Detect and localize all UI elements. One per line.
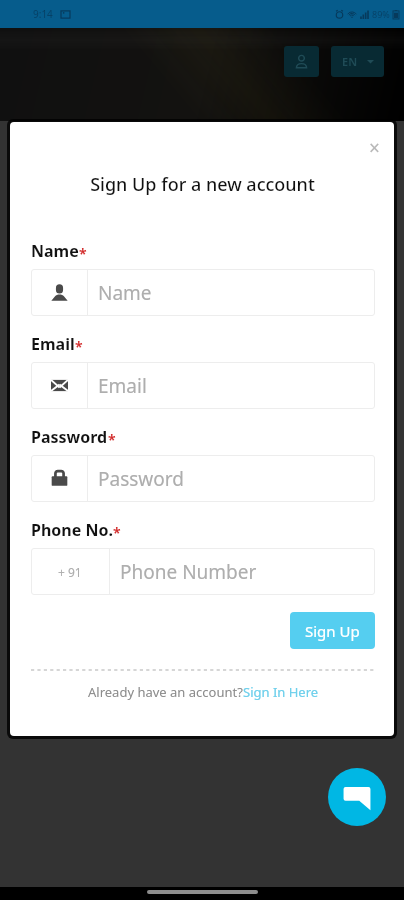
staticText: Email	[98, 373, 147, 399]
button[interactable]: Sign Up	[290, 612, 375, 649]
button[interactable]: Chat	[328, 768, 386, 826]
button[interactable]: Close	[362, 135, 386, 159]
staticText: 9:14	[33, 7, 53, 21]
button[interactable]: Sign In Here	[243, 683, 319, 701]
staticText: *	[108, 430, 116, 449]
staticText: *	[75, 337, 83, 356]
staticText: + 91	[58, 564, 82, 580]
staticText: EN	[342, 54, 358, 69]
staticText: 89%	[372, 8, 390, 20]
staticText: *	[79, 244, 87, 263]
staticText: *	[113, 523, 121, 542]
staticText: Phone Number	[120, 559, 257, 585]
button[interactable]: Account	[284, 46, 319, 77]
staticText: ×	[369, 135, 380, 159]
staticText: Name	[98, 280, 152, 306]
button[interactable]: Password	[31, 455, 375, 502]
button[interactable]: + 91	[31, 548, 375, 595]
staticText: Name	[31, 240, 79, 262]
staticText: Email	[31, 333, 75, 355]
button[interactable]: EN	[331, 46, 384, 77]
button[interactable]: Name	[31, 269, 375, 316]
staticText: Phone No.	[31, 519, 113, 541]
staticText: Sign Up for a new account	[90, 172, 315, 197]
staticText: Sign Up	[305, 621, 360, 641]
staticText: Already have an account?	[88, 683, 243, 701]
button[interactable]: Email	[31, 362, 375, 409]
staticText: Password	[31, 426, 108, 448]
staticText: Password	[98, 466, 184, 492]
